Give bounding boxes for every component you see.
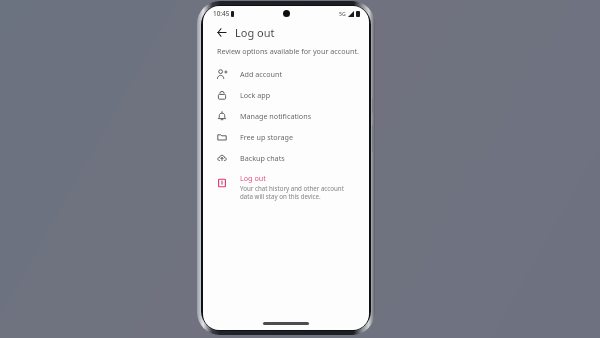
button[interactable]: Log out xyxy=(203,168,369,205)
staticText: Log out xyxy=(235,25,275,40)
button[interactable]: Manage notifications xyxy=(203,105,369,126)
staticText: Review options available for your accoun… xyxy=(217,46,359,56)
other: Free up storage xyxy=(217,132,227,142)
other: Lock app xyxy=(217,90,227,100)
button[interactable]: Lock app xyxy=(203,84,369,105)
button[interactable]: Back xyxy=(213,24,229,40)
staticText: Backup chats xyxy=(240,153,285,163)
button[interactable]: Free up storage xyxy=(203,126,369,147)
staticText: 5G xyxy=(339,10,346,17)
button[interactable]: Add account xyxy=(203,63,369,84)
staticText: Manage notifications xyxy=(240,111,312,121)
staticText: Add account xyxy=(240,69,283,79)
staticText: Your chat history and other account data… xyxy=(240,184,355,200)
staticText: Log out xyxy=(240,173,266,183)
staticText: 10:45 xyxy=(213,9,230,18)
other: Backup chats xyxy=(217,153,227,163)
other: Add account xyxy=(217,69,227,79)
button[interactable]: Backup chats xyxy=(203,147,369,168)
staticText: Lock app xyxy=(240,90,271,100)
staticText: Free up storage xyxy=(240,132,293,142)
other: Manage notifications xyxy=(217,111,227,121)
